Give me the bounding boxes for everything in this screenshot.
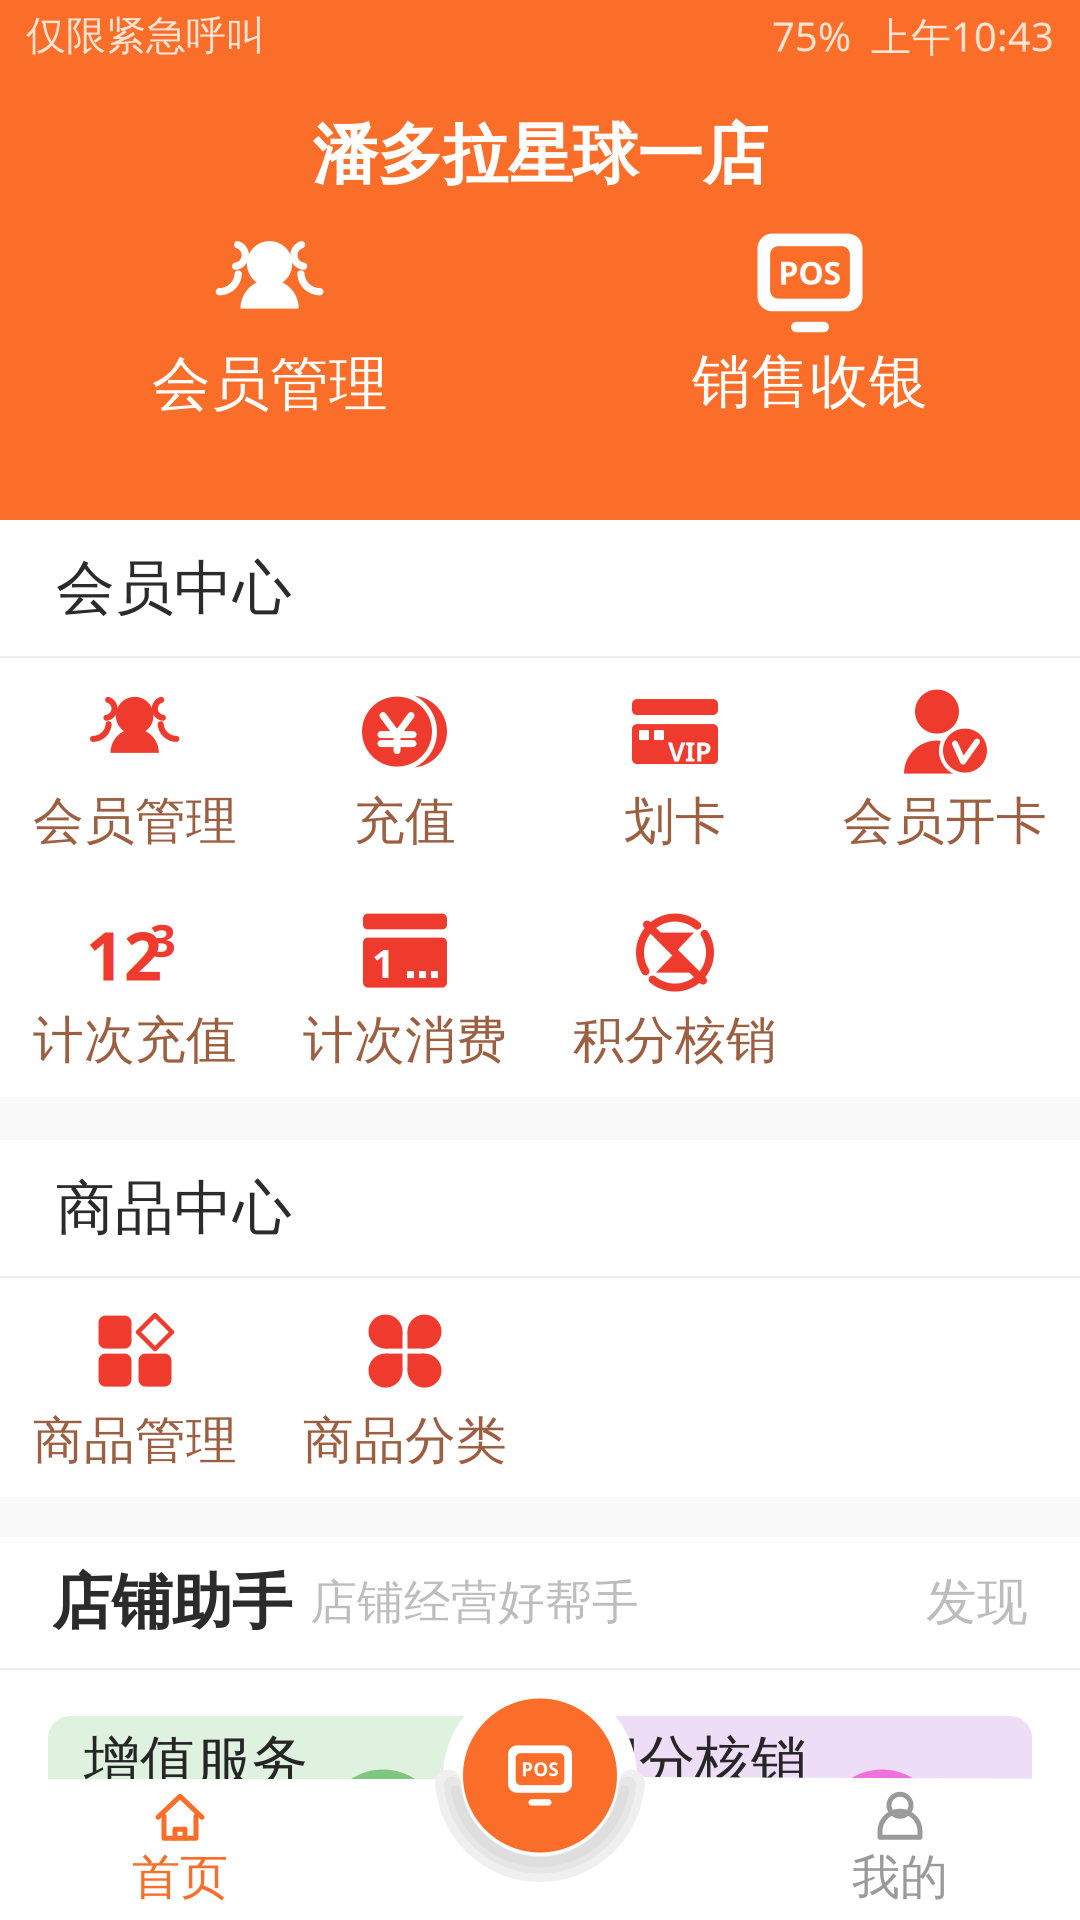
staticText: 会员管理 — [152, 348, 388, 421]
button[interactable]: 积分核销 — [540, 876, 810, 1098]
staticText: 增值服务 — [84, 1727, 308, 1797]
staticText: 潘多拉星球一店 — [312, 114, 767, 196]
button[interactable]: 会员管理 — [0, 232, 540, 421]
staticText: 计次充值 — [33, 1009, 237, 1072]
staticText: 店铺经营好帮手 — [310, 1573, 639, 1632]
staticText: 我的 — [852, 1847, 948, 1908]
staticText: 商品管理 — [33, 1409, 237, 1473]
staticText: 商品分类 — [303, 1409, 507, 1473]
staticText: 发现 — [926, 1571, 1028, 1634]
staticText: 计次消费 — [303, 1009, 507, 1072]
staticText: POS — [778, 251, 841, 294]
staticText: 商品中心 — [56, 1171, 292, 1245]
button[interactable]: VIP — [540, 657, 810, 879]
staticText: 3 — [150, 909, 176, 970]
staticText: 1 — [372, 936, 395, 989]
button[interactable]: 收银 — [463, 1698, 617, 1852]
button[interactable]: 首页 — [0, 1778, 360, 1920]
staticText: 积分核销 — [573, 1009, 777, 1072]
button[interactable]: 增值服务 — [48, 1716, 533, 1880]
staticText: 首页 — [132, 1847, 228, 1908]
button[interactable]: 店铺助手 — [0, 1537, 1080, 1668]
staticText: 75% 上午10:43 — [772, 9, 1054, 63]
button[interactable]: 我的 — [720, 1778, 1080, 1920]
staticText: 充值 — [354, 790, 456, 853]
button[interactable]: 积分核销 — [547, 1716, 1032, 1880]
button[interactable]: POS — [540, 235, 1080, 419]
button[interactable]: 商品管理 — [0, 1277, 270, 1499]
staticText: 会员开卡 — [843, 790, 1047, 853]
button[interactable]: 商品分类 — [270, 1277, 540, 1499]
staticText: 12 — [86, 910, 162, 999]
staticText: 销售收银 — [692, 345, 928, 419]
button[interactable]: 会员开卡 — [810, 657, 1080, 879]
button[interactable]: 会员管理 — [0, 657, 270, 879]
staticText: 会员管理 — [33, 790, 237, 853]
staticText: 划卡 — [624, 790, 726, 853]
button[interactable]: 充值 — [270, 657, 540, 879]
staticText: 会员中心 — [56, 551, 292, 625]
staticText: 仅限紧急呼叫 — [26, 11, 266, 61]
staticText: 店铺助手 — [52, 1565, 292, 1640]
staticText: POS — [521, 1757, 558, 1781]
staticText: VIP — [668, 733, 712, 769]
staticText: 积分核销 — [583, 1727, 807, 1797]
button[interactable]: 1 — [270, 876, 540, 1098]
button[interactable]: 12 — [0, 876, 270, 1098]
